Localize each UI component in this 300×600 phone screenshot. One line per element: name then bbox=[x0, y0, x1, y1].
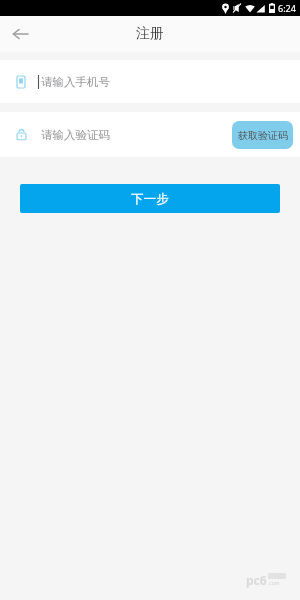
staticText: 请输入验证码 bbox=[41, 128, 110, 142]
button[interactable]: 获取验证码 bbox=[232, 121, 293, 149]
staticText: 6:24 bbox=[278, 2, 296, 14]
button[interactable]: 请输入手机号 bbox=[0, 60, 300, 103]
staticText: 下一步 bbox=[131, 191, 169, 207]
staticText: 请输入手机号 bbox=[41, 75, 110, 89]
button[interactable]: Back bbox=[0, 16, 40, 52]
button[interactable]: 请输入验证码 bbox=[0, 112, 300, 157]
staticText: 获取验证码 bbox=[238, 129, 288, 142]
staticText: pc6 bbox=[246, 572, 267, 588]
button[interactable]: 下一步 bbox=[20, 184, 280, 213]
staticText: .com bbox=[268, 580, 280, 587]
staticText: 注册 bbox=[136, 25, 164, 43]
